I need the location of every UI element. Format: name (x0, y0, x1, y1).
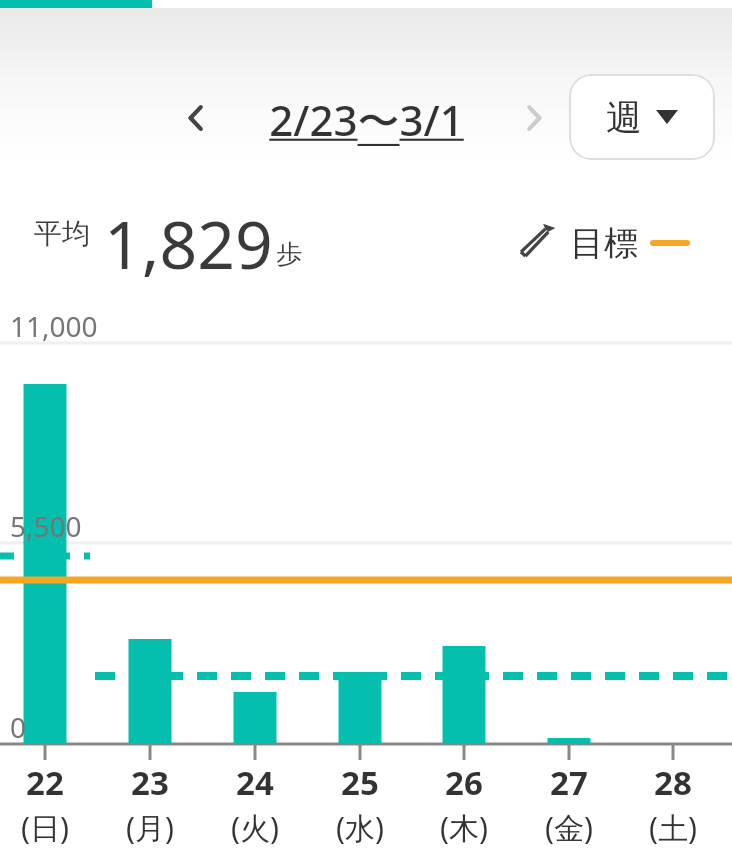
staticText: 23 (131, 760, 169, 805)
staticText: 26 (445, 760, 483, 805)
staticText: (月) (126, 807, 174, 848)
button[interactable]: 週 (569, 74, 715, 160)
staticText: 歩 (276, 238, 302, 271)
staticText: 11,000 (10, 307, 98, 345)
staticText: (日) (21, 807, 69, 848)
staticText: (木) (440, 807, 488, 848)
button[interactable]: 前の週 (160, 82, 232, 154)
staticText: 27 (550, 760, 588, 805)
staticText: 2/23〜3/1 (269, 91, 464, 148)
button[interactable]: 目標を編集 (514, 206, 690, 280)
staticText: 22 (26, 760, 64, 805)
button[interactable]: 2/23〜3/1 (248, 86, 484, 152)
staticText: (金) (545, 807, 593, 848)
other: 目標を編集 (514, 221, 558, 265)
staticText: (土) (649, 807, 697, 848)
button[interactable]: 24 (210, 760, 300, 848)
staticText: 28 (654, 760, 692, 805)
button[interactable]: 25 (315, 760, 405, 848)
staticText: 24 (236, 760, 274, 805)
button[interactable]: 28 (628, 760, 718, 848)
staticText: 1,829 (104, 198, 273, 288)
staticText: 平均 (34, 216, 90, 251)
button[interactable]: 22 (0, 760, 90, 848)
staticText: 25 (341, 760, 379, 805)
staticText: 5,500 (10, 507, 82, 545)
button[interactable]: 27 (524, 760, 614, 848)
staticText: 0 (10, 708, 27, 746)
staticText: 週 (606, 95, 642, 140)
staticText: (火) (231, 807, 279, 848)
staticText: 目標 (570, 222, 638, 265)
button[interactable]: 26 (419, 760, 509, 848)
button[interactable]: 次の週 (498, 82, 570, 154)
button[interactable]: 23 (105, 760, 195, 848)
staticText: (水) (336, 807, 384, 848)
